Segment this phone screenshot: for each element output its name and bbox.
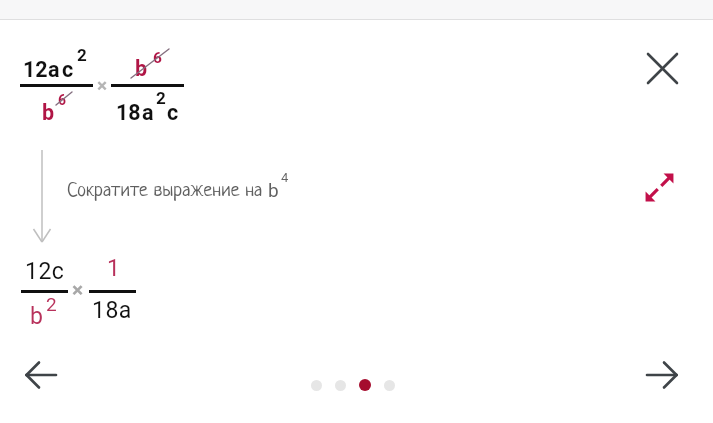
staticText: ×	[97, 74, 108, 96]
staticText: 12c	[25, 258, 65, 285]
staticText: 4	[281, 170, 289, 185]
staticText: 1	[107, 255, 120, 282]
staticText: ×	[72, 278, 84, 303]
button[interactable]: Step 1	[311, 380, 322, 391]
staticText: 2	[46, 293, 57, 315]
staticText: 18a	[92, 297, 132, 324]
button[interactable]: Step 4	[384, 380, 395, 391]
button[interactable]: Expand	[637, 165, 681, 209]
staticText: 6	[58, 92, 67, 108]
staticText: a	[142, 100, 154, 125]
staticText: c	[167, 100, 179, 125]
button[interactable]: Next	[639, 352, 685, 398]
button[interactable]: Close	[640, 46, 684, 90]
staticText: 6	[153, 49, 162, 67]
staticText: c	[62, 57, 74, 82]
staticText: b	[42, 100, 55, 125]
button[interactable]: Step 3	[359, 379, 371, 391]
staticText: 2	[156, 88, 166, 108]
staticText: b	[30, 303, 43, 330]
staticText: 2	[77, 45, 87, 65]
staticText: a	[48, 57, 60, 82]
staticText: b	[135, 56, 148, 81]
staticText: 18	[116, 100, 141, 125]
button[interactable]: Back	[18, 352, 64, 398]
staticText: Сократите выражение на	[67, 180, 263, 201]
button[interactable]: Step 2	[335, 380, 346, 391]
staticText: 12	[23, 57, 48, 82]
staticText: b	[268, 179, 279, 201]
